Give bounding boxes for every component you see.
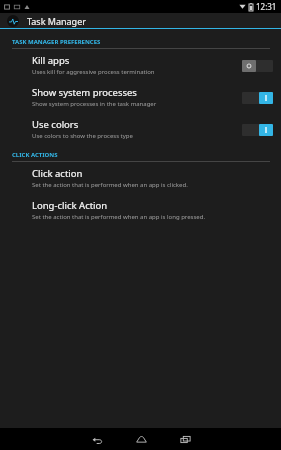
button[interactable]: On (242, 123, 273, 136)
staticText: Click action (32, 167, 83, 180)
button[interactable]: Home (119, 428, 163, 450)
staticText: Show system processes in the task manage… (32, 100, 157, 108)
button[interactable]: Long-click Action (0, 194, 281, 226)
staticText: TASK MANAGER PREFERENCES (12, 38, 101, 46)
staticText: Set the action that is performed when an… (32, 181, 188, 189)
staticText: Set the action that is performed when an… (32, 213, 205, 221)
other: Task Manager icon (7, 15, 19, 27)
button[interactable]: Click action (0, 162, 281, 194)
button[interactable]: Off (242, 59, 273, 72)
button[interactable]: Use colors (0, 113, 281, 145)
staticText: Use colors to show the process type (32, 132, 133, 140)
button[interactable]: Show system processes (0, 81, 281, 113)
button[interactable]: Back (75, 428, 119, 450)
staticText: 12:31 (256, 1, 277, 12)
button[interactable]: Recent apps (163, 428, 207, 450)
staticText: Use colors (32, 118, 79, 131)
staticText: Kill apps (32, 54, 70, 67)
button[interactable]: Kill apps (0, 49, 281, 81)
staticText: Long-click Action (32, 199, 108, 212)
staticText: Show system processes (32, 86, 137, 99)
staticText: Task Manager (27, 15, 86, 27)
staticText: CLICK ACTIONS (12, 151, 58, 159)
button[interactable]: On (242, 91, 273, 104)
staticText: Uses kill for aggressive process termina… (32, 68, 155, 76)
